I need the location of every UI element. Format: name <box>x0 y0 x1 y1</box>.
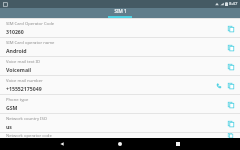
button[interactable]: Call <box>213 80 224 91</box>
button[interactable]: Copy <box>225 99 236 110</box>
button[interactable]: Recent apps <box>172 138 184 150</box>
button[interactable]: Copy <box>225 61 236 72</box>
button[interactable]: SIM 1 <box>92 8 148 18</box>
button[interactable]: Voice mail text ID <box>0 57 240 75</box>
button[interactable]: Network country ISO <box>0 114 240 132</box>
button[interactable]: Copy <box>225 42 236 53</box>
staticText: +15552175049 <box>6 85 42 92</box>
button[interactable]: Back <box>56 138 68 150</box>
button[interactable]: Network operator code <box>0 133 240 138</box>
staticText: Network country ISO <box>6 116 48 122</box>
staticText: us <box>6 123 12 130</box>
button[interactable]: Copy <box>225 80 236 91</box>
staticText: Android <box>6 47 27 54</box>
button[interactable]: Home <box>114 138 126 150</box>
staticText: Voicemail <box>6 66 32 73</box>
staticText: GSM <box>6 104 18 111</box>
staticText: SIM 1 <box>114 8 127 14</box>
button[interactable]: Copy <box>225 118 236 129</box>
staticText: Network operator code <box>6 133 52 138</box>
staticText: Voice mail number <box>6 78 43 84</box>
button[interactable]: Copy <box>225 133 236 138</box>
staticText: 8:47 <box>229 1 238 7</box>
staticText: SIM Card operator name <box>6 40 55 46</box>
staticText: 310260 <box>6 28 24 35</box>
button[interactable]: SIM Card Operator Code <box>0 19 240 37</box>
staticText: Phone type <box>6 97 29 103</box>
button[interactable]: Phone type <box>0 95 240 113</box>
staticText: Voice mail text ID <box>6 59 41 65</box>
staticText: SIM Card Operator Code <box>6 21 55 27</box>
button[interactable]: SIM Card operator name <box>0 38 240 56</box>
button[interactable]: Copy <box>225 23 236 34</box>
button[interactable]: Voice mail number <box>0 76 240 94</box>
